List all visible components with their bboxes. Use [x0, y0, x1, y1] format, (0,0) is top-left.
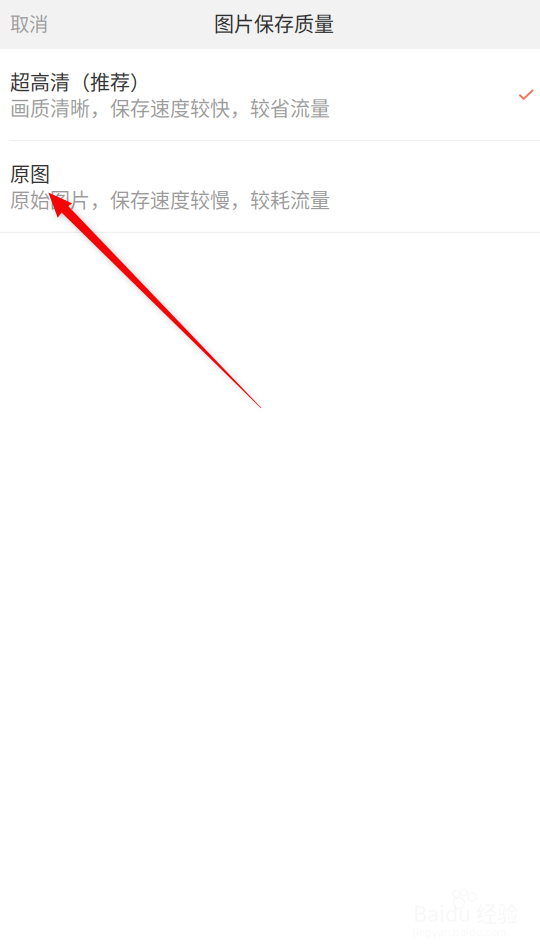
button[interactable]: 原图 [0, 141, 540, 232]
staticText: 取消 [10, 9, 48, 37]
staticText: 图片保存质量 [214, 8, 334, 37]
staticText: 原始图片，保存速度较慢，较耗流量 [10, 185, 330, 214]
button[interactable]: 超高清（推荐） [0, 49, 540, 140]
staticText: 画质清晰，保存速度较快，较省流量 [10, 93, 330, 122]
staticText: 原图 [10, 159, 50, 188]
staticText: 超高清（推荐） [10, 67, 150, 96]
button[interactable]: 取消 [0, 0, 64, 49]
